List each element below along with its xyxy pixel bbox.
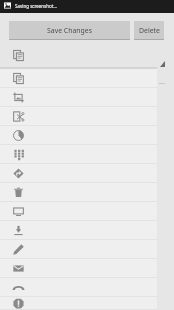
button[interactable]: Cut: [0, 107, 157, 126]
button[interactable]: Download: [0, 221, 157, 240]
button[interactable]: Dial pad: [0, 145, 157, 164]
button[interactable]: Select icon: [0, 41, 174, 69]
button[interactable]: Data usage: [0, 126, 157, 145]
button[interactable]: Copy: [0, 69, 157, 88]
button[interactable]: Save Changes: [9, 21, 130, 40]
button[interactable]: End call: [0, 278, 157, 297]
button[interactable]: Delete: [134, 21, 164, 40]
button[interactable]: Directions: [0, 164, 157, 183]
button[interactable]: Email: [0, 259, 157, 278]
button[interactable]: Desktop: [0, 202, 157, 221]
staticText: Delete: [139, 26, 160, 35]
button[interactable]: Delete: [0, 183, 157, 202]
staticText: Save Changes: [47, 26, 92, 35]
staticText: Saving screenshot…: [15, 3, 57, 9]
button[interactable]: Crop: [0, 88, 157, 107]
button[interactable]: Edit: [0, 240, 157, 259]
button[interactable]: Error: [0, 297, 157, 310]
